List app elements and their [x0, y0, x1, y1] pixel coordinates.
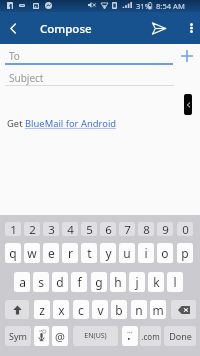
staticText: Get: [7, 117, 25, 130]
button[interactable]: 9: [157, 222, 173, 236]
button[interactable]: v: [92, 300, 108, 319]
staticText: s: [38, 274, 44, 290]
button[interactable]: Period: [122, 326, 138, 346]
button[interactable]: f: [71, 272, 87, 292]
staticText: To: [9, 49, 20, 63]
button[interactable]: Back: [0, 12, 27, 44]
button[interactable]: Backspace: [171, 300, 196, 319]
staticText: 8:54 AM: [156, 1, 185, 11]
button[interactable]: b: [111, 300, 127, 319]
staticText: k: [153, 274, 160, 290]
button[interactable]: a: [14, 272, 30, 292]
button[interactable]: g: [91, 272, 107, 292]
button[interactable]: @: [52, 326, 68, 346]
button[interactable]: w: [24, 243, 40, 263]
button[interactable]: 4: [62, 222, 78, 236]
button[interactable]: k: [148, 272, 164, 292]
button[interactable]: h: [110, 272, 126, 292]
button[interactable]: 5: [81, 222, 97, 236]
button[interactable]: c: [73, 300, 89, 319]
staticText: f: [77, 274, 82, 290]
staticText: w: [27, 245, 37, 261]
button[interactable]: Expand panel: [184, 94, 192, 115]
button[interactable]: s: [33, 272, 49, 292]
staticText: h: [114, 274, 122, 290]
button[interactable]: m: [150, 300, 166, 319]
button[interactable]: 7: [119, 222, 135, 236]
button[interactable]: e: [43, 243, 59, 263]
button[interactable]: n: [131, 300, 147, 319]
button[interactable]: Add recipient: [174, 46, 200, 66]
staticText: m: [152, 302, 164, 318]
button[interactable]: Sym: [5, 326, 31, 346]
staticText: 7: [124, 222, 131, 236]
button[interactable]: i: [138, 243, 154, 263]
staticText: z: [39, 302, 45, 318]
staticText: Sym: [9, 330, 27, 342]
staticText: EN(US): [84, 331, 107, 341]
staticText: d: [56, 274, 64, 290]
button[interactable]: p: [177, 243, 193, 263]
staticText: Subject: [9, 71, 44, 85]
staticText: c: [78, 302, 84, 318]
button[interactable]: 3: [43, 222, 59, 236]
staticText: n: [135, 302, 143, 318]
staticText: 3: [48, 222, 55, 236]
button[interactable]: 8: [138, 222, 154, 236]
button[interactable]: 2: [24, 222, 40, 236]
staticText: j: [135, 274, 139, 290]
staticText: 2: [29, 222, 36, 236]
button[interactable]: j: [129, 272, 145, 292]
staticText: t: [87, 245, 92, 261]
button[interactable]: Voice input: [34, 326, 49, 346]
button[interactable]: EN(US): [73, 326, 118, 346]
button[interactable]: q: [5, 243, 21, 263]
staticText: o: [161, 245, 169, 261]
button[interactable]: o: [157, 243, 173, 263]
button[interactable]: z: [34, 300, 50, 319]
staticText: q: [9, 245, 17, 261]
staticText: 9: [162, 222, 169, 236]
staticText: a: [19, 274, 26, 290]
staticText: g: [95, 274, 103, 290]
staticText: 8: [143, 222, 150, 236]
staticText: v: [97, 302, 104, 318]
staticText: u: [123, 245, 131, 261]
staticText: 0: [182, 222, 189, 236]
staticText: 31%: [136, 1, 151, 11]
button[interactable]: u: [119, 243, 135, 263]
staticText: y: [105, 245, 112, 261]
button[interactable]: d: [52, 272, 68, 292]
staticText: Done: [169, 330, 192, 342]
button[interactable]: r: [62, 243, 78, 263]
button[interactable]: BlueMail for Android: [25, 117, 117, 130]
staticText: x: [58, 302, 65, 318]
button[interactable]: Send: [146, 12, 172, 44]
staticText: Compose: [40, 21, 92, 37]
button[interactable]: 1: [5, 222, 21, 236]
staticText: 6: [105, 222, 112, 236]
staticText: p: [181, 245, 189, 261]
button[interactable]: t: [81, 243, 97, 263]
staticText: e: [48, 245, 55, 261]
staticText: 4: [67, 222, 74, 236]
staticText: b: [115, 302, 123, 318]
button[interactable]: x: [53, 300, 69, 319]
button[interactable]: l: [167, 272, 183, 292]
staticText: r: [68, 245, 73, 261]
button[interactable]: Shift: [5, 300, 29, 319]
staticText: .com: [141, 331, 160, 342]
staticText: @: [55, 329, 65, 344]
staticText: i: [144, 245, 148, 261]
button[interactable]: y: [100, 243, 116, 263]
button[interactable]: .com: [140, 326, 161, 346]
staticText: 5: [86, 222, 93, 236]
staticText: l: [173, 274, 177, 290]
button[interactable]: More options: [182, 12, 200, 44]
button[interactable]: 6: [100, 222, 116, 236]
button[interactable]: 0: [177, 222, 193, 236]
staticText: 1: [10, 222, 17, 236]
button[interactable]: Done: [164, 326, 196, 346]
